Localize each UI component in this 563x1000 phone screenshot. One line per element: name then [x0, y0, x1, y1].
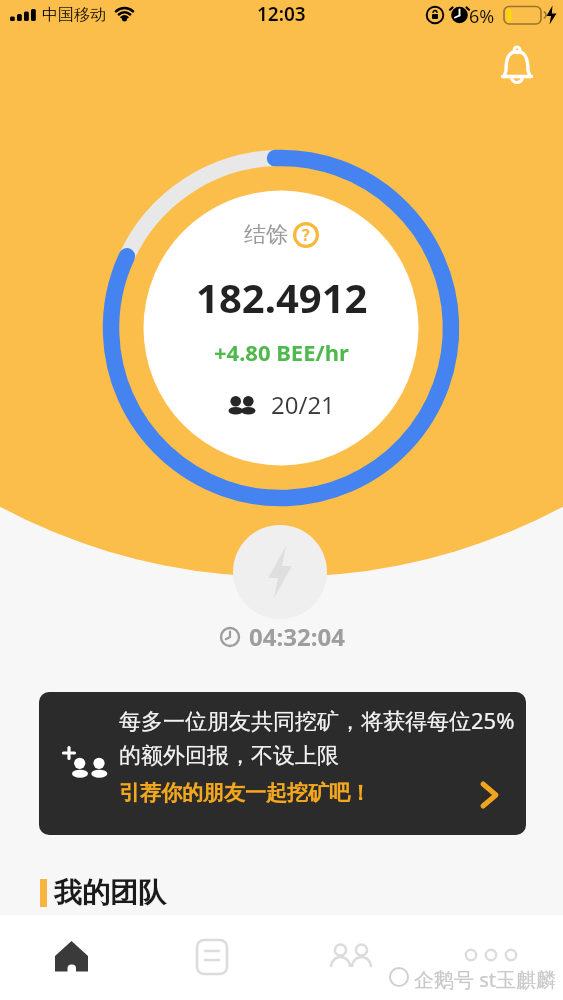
staticText: +4.80 BEE/hr — [214, 337, 349, 367]
staticText: 20/21 — [271, 388, 335, 421]
staticText: 182.4912 — [196, 270, 368, 324]
staticText: 企鹅号 st玉麒麟 — [414, 966, 556, 993]
staticText: 每多一位朋友共同挖矿，将获得每位25% — [119, 705, 515, 735]
button[interactable]: ? — [293, 222, 319, 248]
staticText: 中国移动 — [42, 5, 106, 25]
staticText: 6% — [469, 4, 495, 29]
button[interactable] — [233, 525, 327, 619]
button[interactable] — [41, 926, 102, 987]
staticText: 04:32:04 — [249, 620, 345, 653]
button[interactable] — [495, 44, 539, 88]
staticText: 的额外回报，不设上限 — [119, 742, 339, 770]
staticText: 引荐你的朋友一起挖矿吧！ — [119, 780, 371, 806]
button[interactable] — [461, 926, 522, 987]
staticText: 结馀 — [244, 221, 288, 249]
staticText: 12:03 — [257, 1, 306, 27]
staticText: 我的团队 — [54, 875, 166, 910]
button[interactable] — [182, 926, 243, 987]
button[interactable]: 每多一位朋友共同挖矿，将获得每位25% — [39, 692, 526, 835]
staticText: ? — [302, 224, 310, 246]
button[interactable] — [321, 926, 382, 987]
